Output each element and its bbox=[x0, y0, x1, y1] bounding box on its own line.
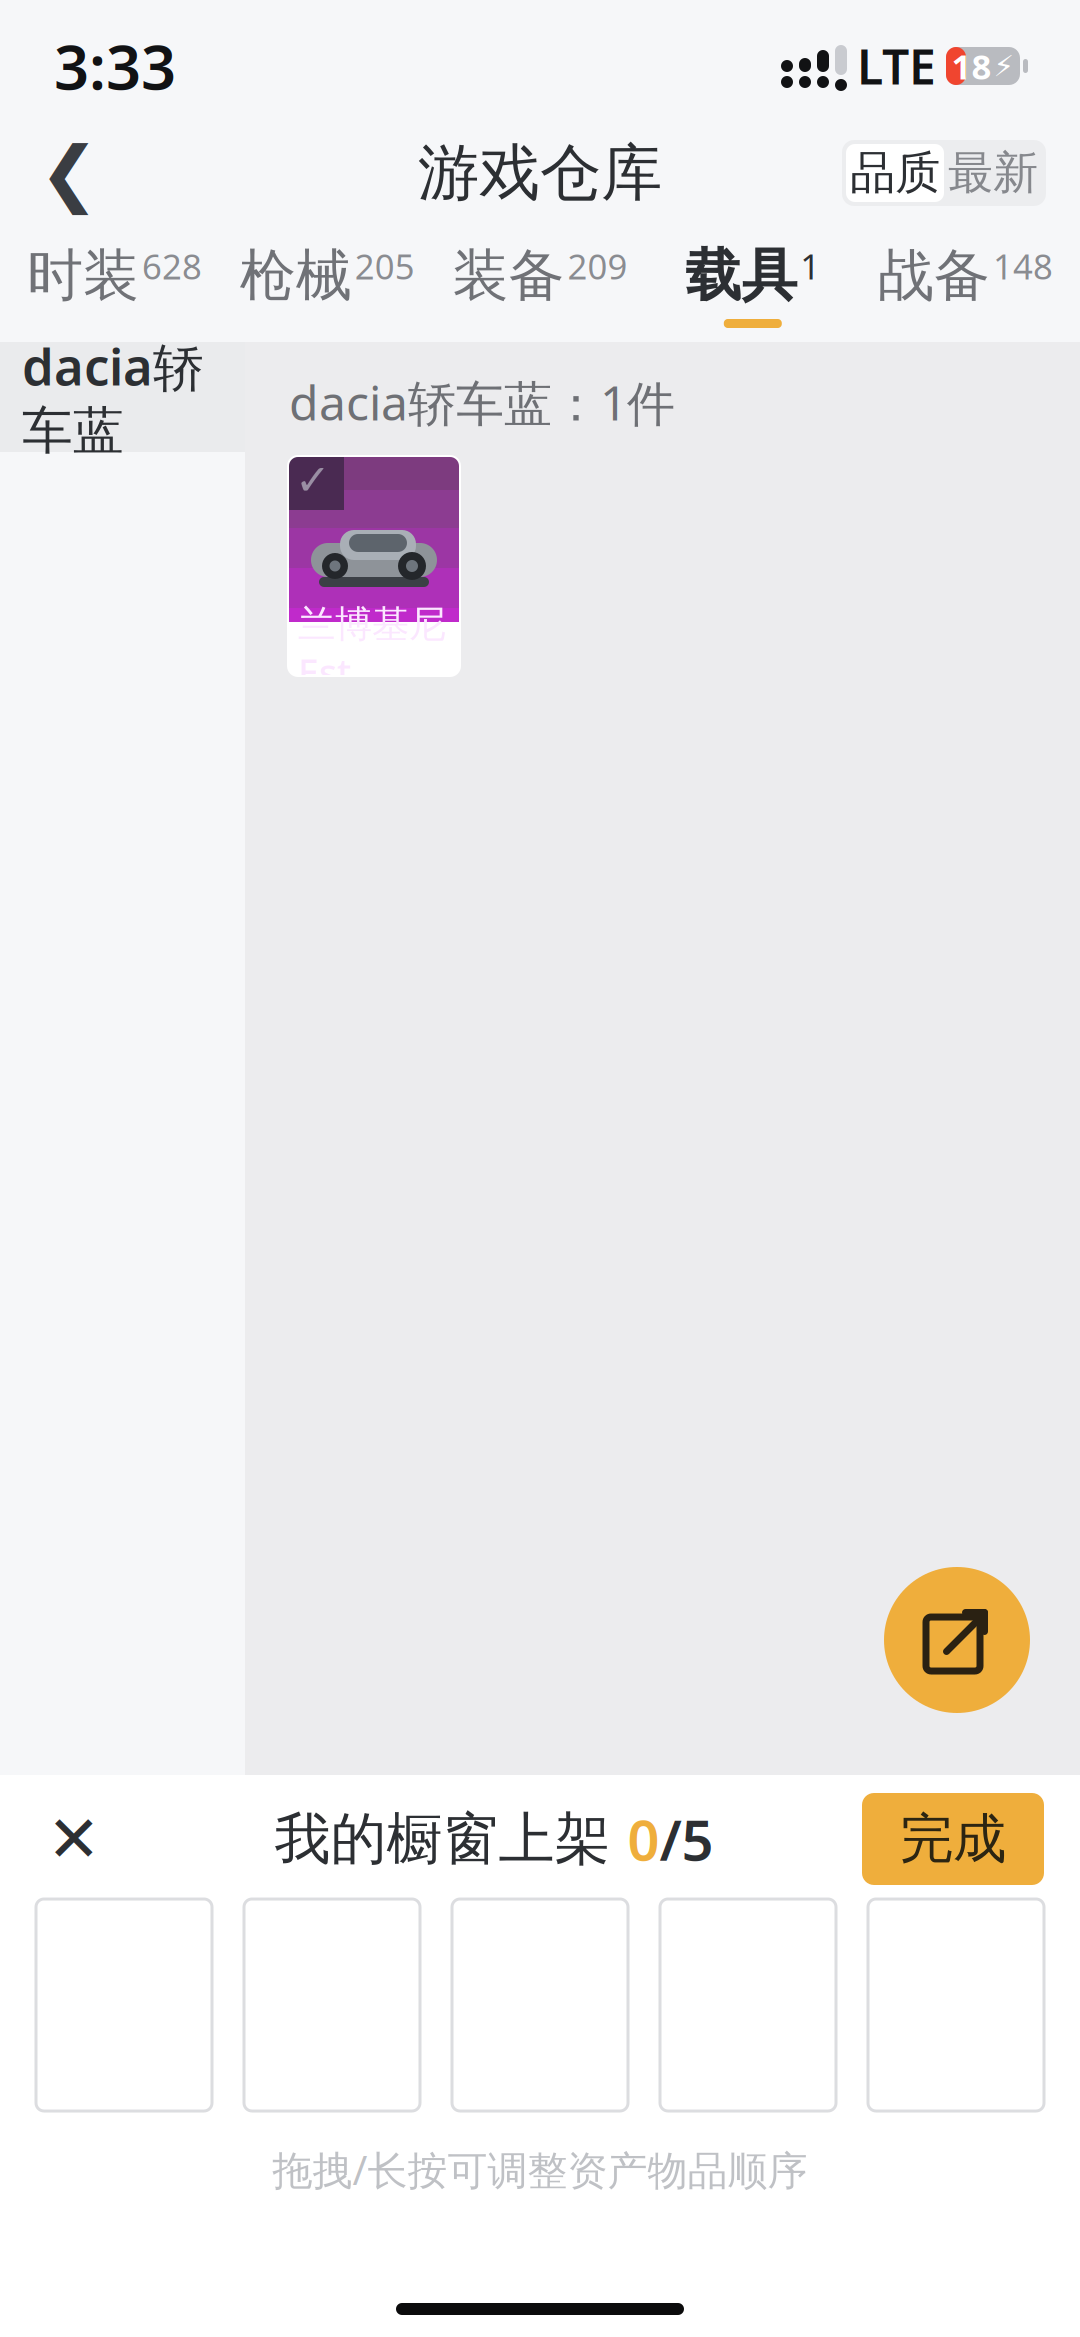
staticText: /5 bbox=[659, 1802, 713, 1876]
staticText: 游戏仓库 bbox=[418, 135, 662, 211]
button[interactable]: 枪械 bbox=[221, 232, 434, 342]
staticText: 628 bbox=[142, 243, 202, 289]
staticText: 载具 bbox=[685, 241, 797, 310]
staticText: ⚡︎ bbox=[993, 49, 1014, 83]
button[interactable]: 关闭 bbox=[22, 1787, 126, 1891]
staticText: 战备 bbox=[878, 241, 990, 310]
staticText: 1 bbox=[800, 243, 820, 289]
button[interactable]: 装备 bbox=[434, 232, 646, 342]
button[interactable]: 分享 bbox=[884, 1567, 1030, 1713]
button[interactable]: 时装 bbox=[8, 232, 221, 342]
staticText: 拖拽/长按可调整资产物品顺序 bbox=[272, 2143, 807, 2196]
staticText: 0 bbox=[627, 1802, 659, 1876]
staticText: ❮ bbox=[39, 132, 99, 214]
staticText: 我的橱窗上架 bbox=[274, 1805, 627, 1873]
staticText: 兰博基尼Est... bbox=[298, 601, 446, 697]
staticText: 时装 bbox=[27, 241, 139, 310]
button[interactable]: 载具 bbox=[646, 232, 859, 342]
button[interactable]: 战备 bbox=[859, 232, 1072, 342]
staticText: 枪械 bbox=[240, 241, 352, 310]
staticText: ✓ bbox=[295, 456, 331, 504]
button[interactable]: dacia轿车蓝 bbox=[0, 342, 245, 452]
staticText: dacia轿车蓝 bbox=[22, 332, 204, 462]
staticText: 18 bbox=[951, 43, 991, 89]
staticText: 3:33 bbox=[54, 25, 176, 107]
staticText: 205 bbox=[355, 243, 415, 289]
staticText: 148 bbox=[993, 243, 1053, 289]
staticText: LTE bbox=[857, 34, 936, 98]
staticText: 装备 bbox=[452, 241, 564, 310]
button[interactable]: 返回 bbox=[14, 118, 124, 228]
staticText: 209 bbox=[567, 243, 627, 289]
staticText: ✕ bbox=[47, 1803, 101, 1875]
staticText: 最新 bbox=[948, 145, 1038, 201]
staticText: 完成 bbox=[900, 1806, 1006, 1872]
staticText: 品质 bbox=[850, 145, 940, 201]
button[interactable]: 兰博基尼 Estoque bbox=[288, 456, 460, 676]
button[interactable]: 完成 bbox=[862, 1793, 1044, 1885]
staticText: dacia轿车蓝：1件 bbox=[289, 370, 675, 434]
button[interactable]: 品质 bbox=[846, 144, 944, 202]
button[interactable]: 最新 bbox=[944, 144, 1042, 202]
